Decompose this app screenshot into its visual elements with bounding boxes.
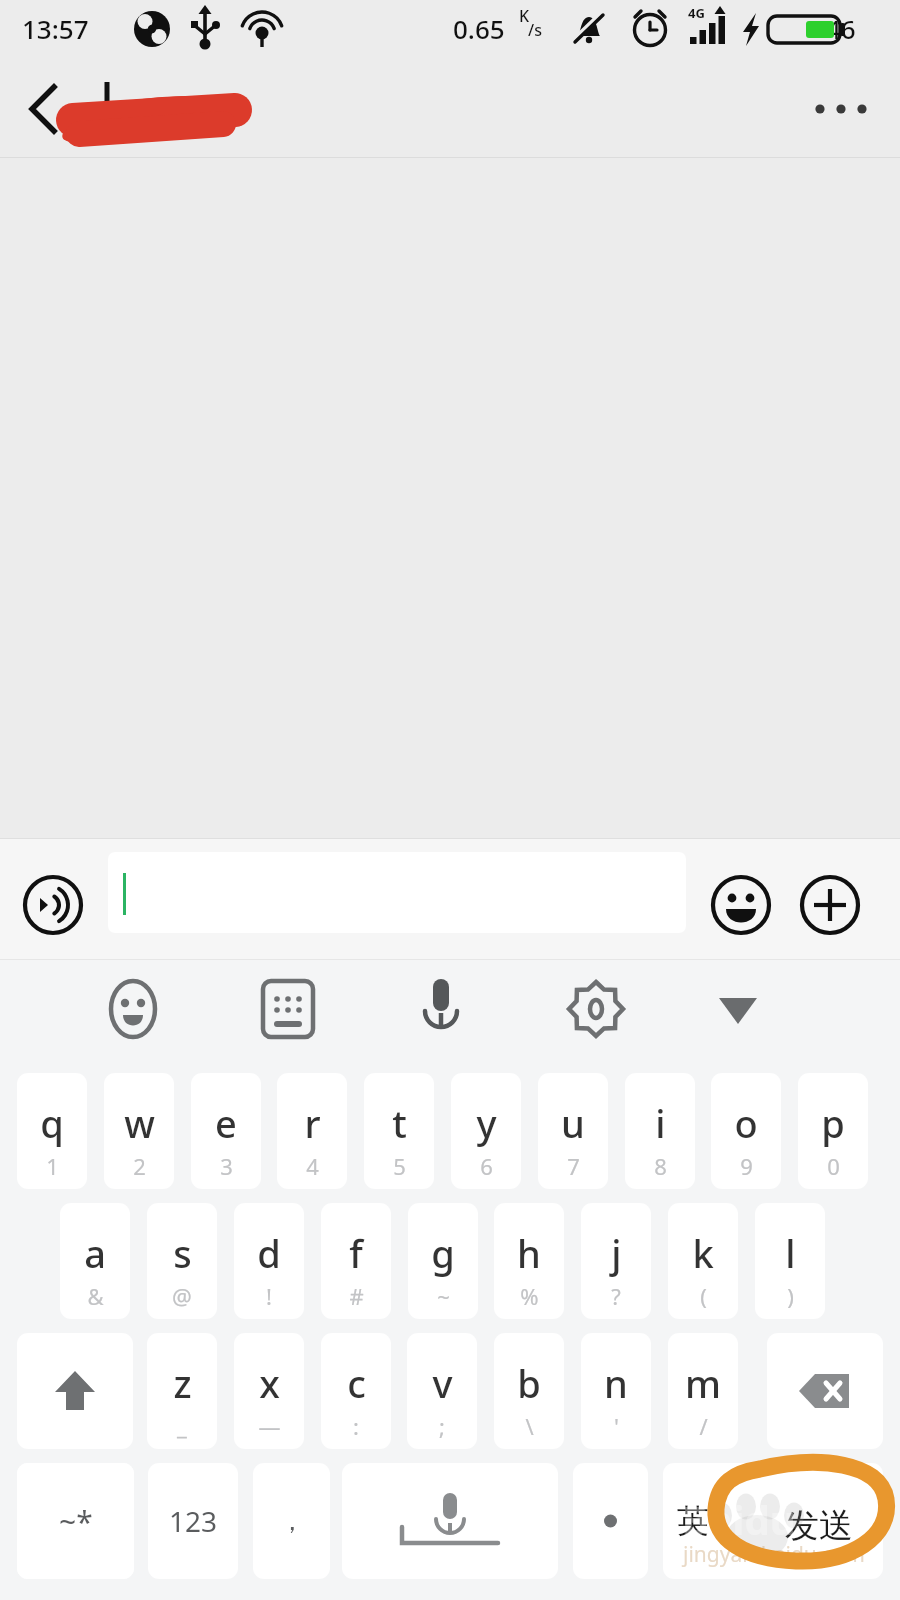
button[interactable]: t bbox=[364, 1073, 434, 1189]
staticText: ; bbox=[439, 1411, 445, 1441]
staticText: 4G bbox=[688, 4, 705, 22]
button[interactable]: Voice input bbox=[18, 870, 88, 940]
staticText: s bbox=[173, 1227, 192, 1279]
staticText: ~* bbox=[59, 1501, 93, 1542]
staticText: 0.65 bbox=[453, 11, 505, 46]
button[interactable]: Delete bbox=[767, 1333, 883, 1449]
staticText: z bbox=[173, 1357, 192, 1409]
staticText: c bbox=[347, 1357, 366, 1409]
staticText: _ bbox=[177, 1411, 187, 1441]
staticText: 9 bbox=[740, 1151, 753, 1181]
staticText: 7 bbox=[567, 1151, 580, 1181]
staticText: q bbox=[40, 1097, 64, 1149]
button[interactable]: More functions bbox=[795, 870, 865, 940]
button[interactable]: n bbox=[581, 1333, 651, 1449]
staticText: a bbox=[84, 1227, 106, 1279]
button[interactable]: ， bbox=[253, 1463, 330, 1579]
button[interactable]: f bbox=[321, 1203, 391, 1319]
staticText: g bbox=[431, 1227, 455, 1279]
button[interactable]: b bbox=[494, 1333, 564, 1449]
staticText: : bbox=[353, 1411, 359, 1441]
button[interactable]: d bbox=[234, 1203, 304, 1319]
button[interactable]: h bbox=[494, 1203, 564, 1319]
button[interactable]: l bbox=[755, 1203, 825, 1319]
button[interactable]: z bbox=[147, 1333, 217, 1449]
staticText: K bbox=[519, 5, 530, 27]
button[interactable]: i bbox=[625, 1073, 695, 1189]
staticText: & bbox=[87, 1281, 104, 1311]
button[interactable]: Symbols bbox=[17, 1463, 134, 1579]
button[interactable]: s bbox=[147, 1203, 217, 1319]
staticText: m bbox=[685, 1357, 721, 1409]
staticText: 4 bbox=[306, 1151, 319, 1181]
button[interactable]: Back bbox=[8, 74, 78, 144]
staticText: u bbox=[561, 1097, 585, 1149]
button[interactable] bbox=[17, 1333, 133, 1449]
staticText: t bbox=[392, 1097, 407, 1149]
staticText: 3 bbox=[220, 1151, 233, 1181]
button[interactable] bbox=[108, 852, 686, 933]
staticText: b bbox=[517, 1357, 541, 1409]
staticText: / bbox=[699, 1411, 708, 1441]
staticText: @ bbox=[172, 1281, 192, 1311]
staticText: o bbox=[734, 1097, 758, 1149]
button[interactable]: y bbox=[451, 1073, 521, 1189]
button[interactable]: Space bbox=[342, 1463, 558, 1579]
staticText: % bbox=[520, 1281, 539, 1311]
staticText: ' bbox=[614, 1411, 619, 1441]
button[interactable]: r bbox=[277, 1073, 347, 1189]
button[interactable]: ~* bbox=[17, 1463, 134, 1579]
staticText: k bbox=[692, 1227, 714, 1279]
button[interactable]: c bbox=[321, 1333, 391, 1449]
staticText: ， bbox=[279, 1505, 305, 1538]
staticText: w bbox=[124, 1097, 155, 1149]
button[interactable]: u bbox=[538, 1073, 608, 1189]
staticText: n bbox=[604, 1357, 628, 1409]
staticText: ~ bbox=[437, 1281, 450, 1311]
button[interactable]: 英 bbox=[663, 1463, 883, 1579]
staticText: y bbox=[476, 1097, 497, 1149]
staticText: /s bbox=[528, 19, 542, 41]
staticText: r bbox=[304, 1097, 321, 1149]
staticText: i bbox=[655, 1097, 666, 1149]
button[interactable]: a bbox=[60, 1203, 130, 1319]
staticText: 5 bbox=[393, 1151, 406, 1181]
button[interactable]: v bbox=[407, 1333, 477, 1449]
button[interactable]: j bbox=[581, 1203, 651, 1319]
button[interactable]: Hide keyboard bbox=[698, 969, 778, 1049]
staticText: jingyan.baidu.com bbox=[683, 1540, 865, 1569]
staticText: 13:57 bbox=[22, 11, 89, 46]
button[interactable]: w bbox=[104, 1073, 174, 1189]
button[interactable]: m bbox=[668, 1333, 738, 1449]
staticText: x bbox=[259, 1357, 280, 1409]
staticText: # bbox=[349, 1281, 364, 1311]
staticText: Baidu bbox=[682, 1492, 796, 1546]
staticText: j bbox=[611, 1227, 622, 1279]
button[interactable]: More options bbox=[806, 74, 876, 144]
button[interactable]: o bbox=[711, 1073, 781, 1189]
staticText: \ bbox=[525, 1411, 534, 1441]
button[interactable]: k bbox=[668, 1203, 738, 1319]
button[interactable]: Settings bbox=[556, 969, 636, 1049]
button[interactable]: Keyboard layout bbox=[248, 969, 328, 1049]
staticText: ( bbox=[700, 1281, 707, 1311]
staticText: — bbox=[258, 1411, 281, 1441]
button[interactable]: Emoji bbox=[706, 870, 776, 940]
staticText: 2 bbox=[133, 1151, 146, 1181]
staticText: p bbox=[821, 1097, 845, 1149]
staticText: v bbox=[432, 1357, 453, 1409]
button[interactable]: g bbox=[408, 1203, 478, 1319]
button[interactable]: Emoji bbox=[93, 969, 173, 1049]
button[interactable]: p bbox=[798, 1073, 868, 1189]
staticText: ? bbox=[611, 1281, 621, 1311]
button[interactable]: x bbox=[234, 1333, 304, 1449]
button[interactable]: 123 bbox=[148, 1463, 238, 1579]
staticText: ! bbox=[266, 1281, 272, 1311]
button[interactable]: e bbox=[191, 1073, 261, 1189]
button[interactable]: Voice bbox=[401, 969, 481, 1049]
staticText: 1 bbox=[46, 1151, 59, 1181]
button[interactable]: q bbox=[17, 1073, 87, 1189]
button[interactable]: Period bbox=[573, 1463, 648, 1579]
staticText: 0 bbox=[827, 1151, 840, 1181]
staticText: 英 bbox=[677, 1501, 709, 1541]
